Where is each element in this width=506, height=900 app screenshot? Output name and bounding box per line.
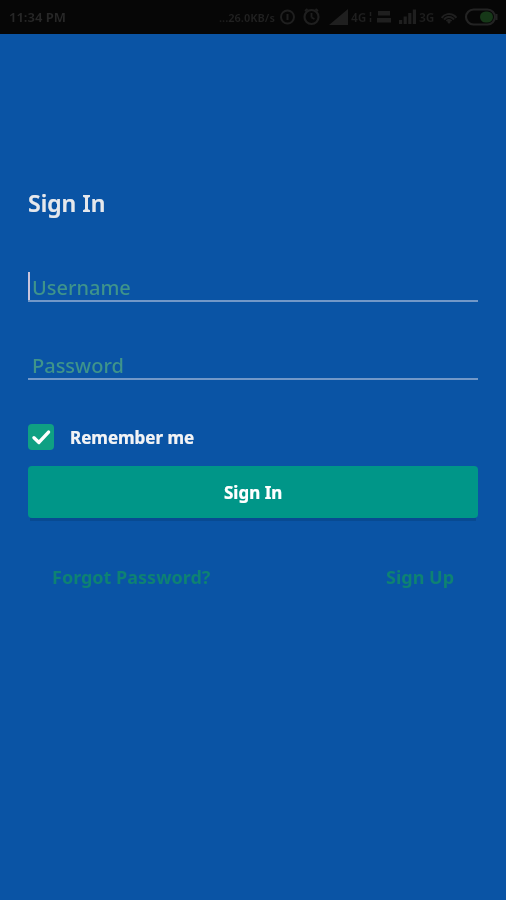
staticText: 3G — [419, 9, 435, 25]
staticText: Remember me — [70, 426, 195, 449]
button[interactable]: Forgot Password? — [52, 565, 211, 590]
button[interactable] — [28, 424, 54, 450]
staticText: Password — [32, 352, 124, 379]
button[interactable]: Sign In — [28, 466, 478, 518]
button[interactable]: Remember me — [28, 424, 195, 450]
staticText: Sign In — [28, 187, 106, 218]
staticText: Sign In — [224, 481, 283, 504]
staticText: Username — [32, 274, 131, 301]
staticText: 11:34 PM — [9, 8, 67, 26]
button[interactable]: Sign Up — [386, 565, 455, 590]
staticText: ...26.0KB/s — [219, 10, 275, 25]
staticText: 4G — [351, 9, 367, 25]
